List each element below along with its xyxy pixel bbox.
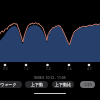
staticText: ウォーク [0, 82, 17, 87]
staticText: 上下動 [31, 82, 43, 87]
staticText: 2.4 [46, 67, 51, 71]
button[interactable]: ウォーク [0, 81, 22, 88]
staticText: 9月8日 10:12 - 11:05 [34, 75, 66, 80]
staticText: 0.0 [3, 67, 8, 71]
staticText: 1.2 [24, 67, 29, 71]
staticText: 心拍 [84, 82, 92, 87]
staticText: 上下動比 [55, 82, 71, 87]
staticText: 3.6 [67, 67, 72, 71]
button[interactable]: 上下動 [25, 81, 48, 88]
button[interactable]: 上下動比 [52, 81, 74, 88]
button[interactable]: 心拍 [80, 81, 95, 88]
staticText: 4.7 [87, 67, 92, 71]
